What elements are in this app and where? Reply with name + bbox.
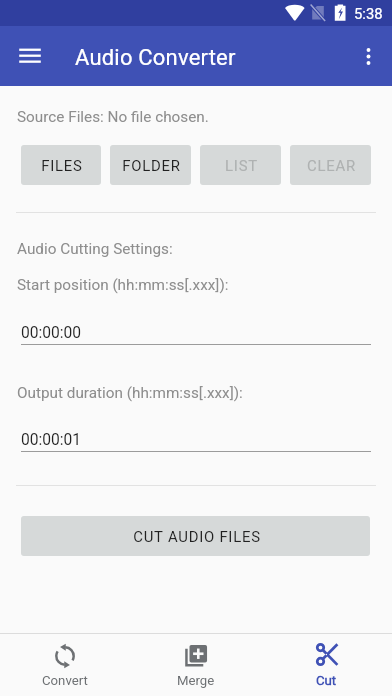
button[interactable]: LIST: [200, 145, 281, 185]
staticText: Convert: [42, 673, 88, 688]
button[interactable]: More options: [344, 31, 392, 79]
staticText: 00:00:00: [21, 324, 82, 342]
staticText: FOLDER: [122, 157, 181, 174]
button[interactable]: 00:00:00: [21, 324, 371, 345]
button[interactable]: FILES: [21, 145, 101, 185]
staticText: Cut: [316, 673, 337, 688]
button[interactable]: CLEAR: [290, 145, 371, 185]
button[interactable]: 00:00:01: [21, 431, 371, 452]
staticText: FILES: [41, 157, 83, 174]
button[interactable]: Merge: [130, 634, 261, 688]
staticText: Output duration (hh:mm:ss[.xxx]):: [17, 384, 243, 402]
button[interactable]: Convert: [0, 634, 130, 688]
staticText: 5:38: [354, 5, 383, 22]
staticText: CUT AUDIO FILES: [133, 528, 261, 545]
staticText: Audio Cutting Settings:: [17, 240, 173, 258]
staticText: Audio Converter: [75, 45, 236, 71]
button[interactable]: FOLDER: [110, 145, 191, 185]
staticText: LIST: [225, 157, 258, 174]
staticText: Source Files: No file chosen.: [17, 108, 209, 126]
button[interactable]: CUT AUDIO FILES: [21, 516, 370, 556]
staticText: Start position (hh:mm:ss[.xxx]):: [17, 276, 229, 294]
staticText: 00:00:01: [21, 431, 82, 449]
button[interactable]: Open navigation menu: [6, 31, 54, 79]
button[interactable]: Cut: [261, 634, 392, 688]
staticText: CLEAR: [307, 157, 356, 174]
staticText: Merge: [177, 673, 215, 688]
